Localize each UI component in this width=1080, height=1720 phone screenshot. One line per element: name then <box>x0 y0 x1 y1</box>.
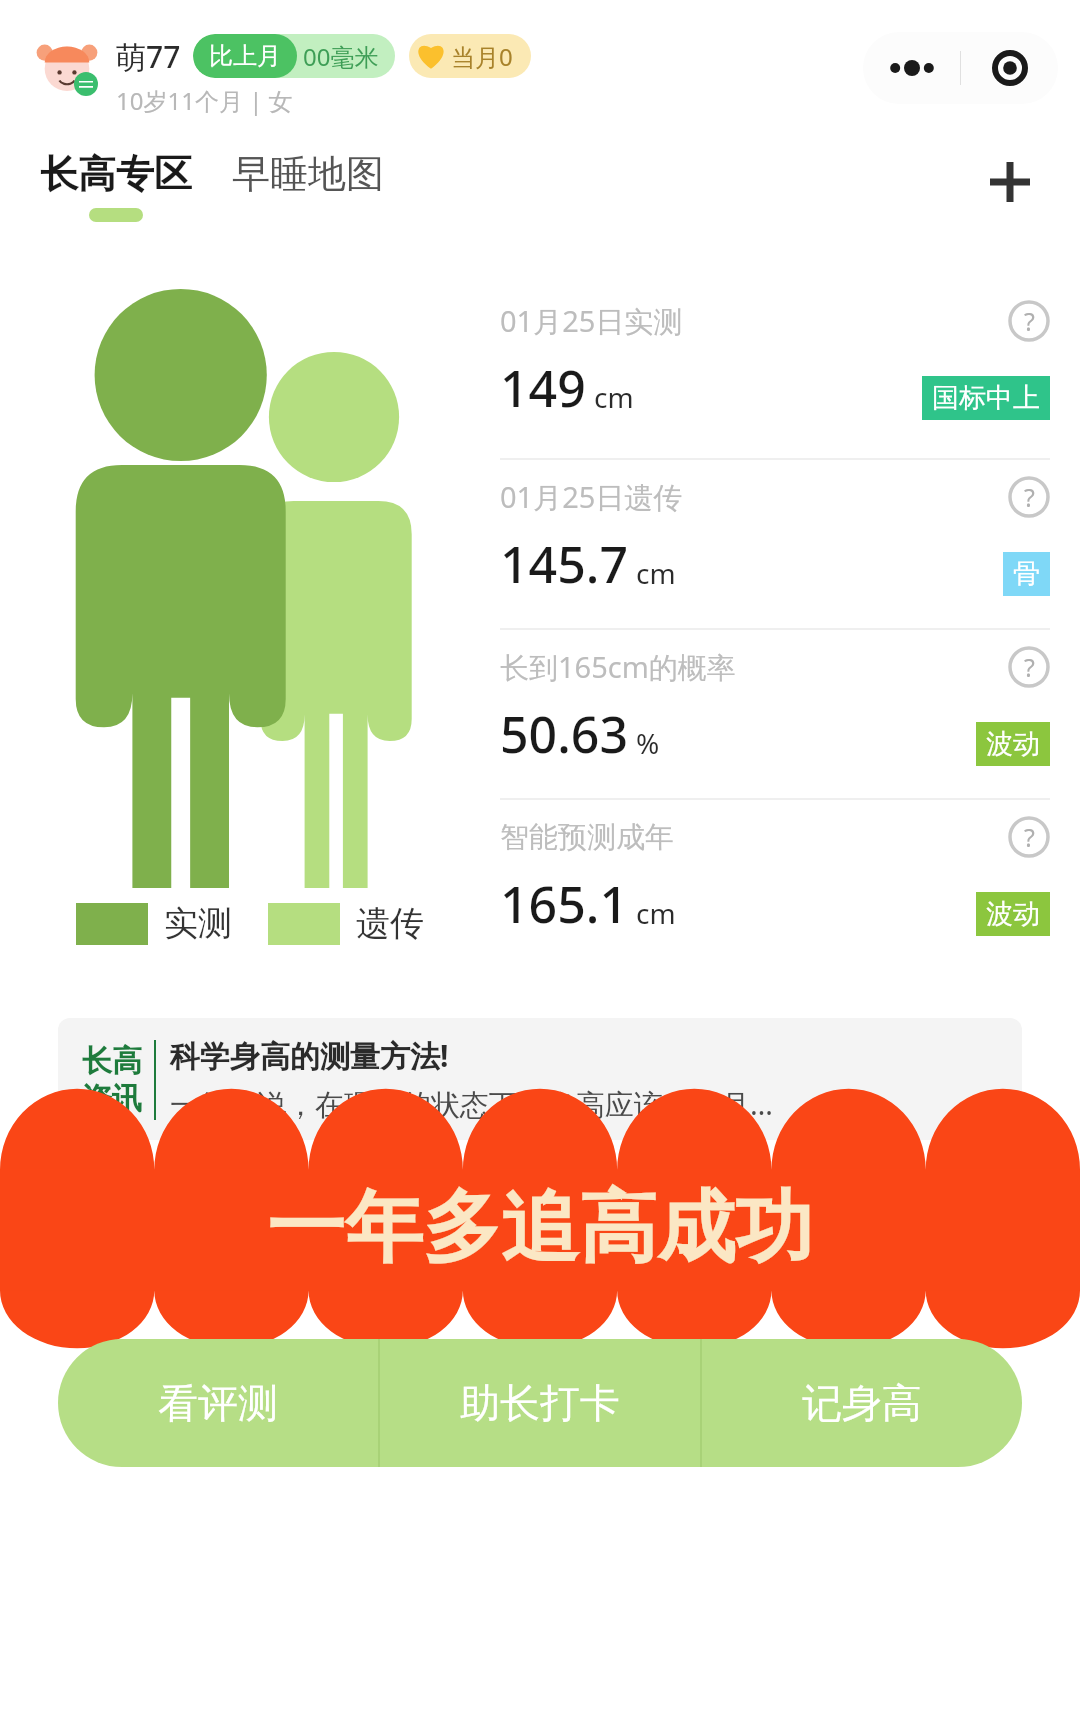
staticText: 看评测 <box>158 1378 278 1428</box>
staticText: 165.1 <box>500 870 628 938</box>
staticText: % <box>636 724 660 762</box>
staticText: 比上月 <box>209 41 281 71</box>
button[interactable]: 一年多追高成功 <box>0 1140 1080 1315</box>
staticText: 10岁11个月 | 女 <box>116 84 293 117</box>
button[interactable]: Help <box>1008 816 1050 858</box>
button[interactable]: 当月0 <box>409 34 531 78</box>
staticText: 波动 <box>986 897 1040 931</box>
button[interactable]: Close <box>961 32 1058 104</box>
button[interactable]: 记身高 <box>702 1339 1022 1467</box>
staticText: 149 <box>500 354 586 422</box>
button[interactable]: 01月25日实测 <box>500 288 1050 458</box>
staticText: 一年多追高成功 <box>267 1179 813 1277</box>
staticText: 助长打卡 <box>460 1378 620 1428</box>
staticText: cm <box>594 378 634 416</box>
staticText: 01月25日遗传 <box>500 477 683 517</box>
staticText: 长到165cm的概率 <box>500 647 736 687</box>
staticText: 科学身高的测量方法! <box>170 1035 449 1076</box>
button[interactable]: 长高 <box>58 1018 1022 1140</box>
button[interactable]: 看评测 <box>58 1339 378 1467</box>
staticText: 骨 <box>1013 557 1040 591</box>
button[interactable]: Switch profile <box>36 34 98 96</box>
staticText: 当月0 <box>451 40 513 73</box>
staticText: 国标中上 <box>932 381 1040 415</box>
staticText: ? <box>1024 480 1035 514</box>
staticText: 智能预测成年 <box>500 819 674 856</box>
button[interactable]: 01月25日遗传 <box>500 458 1050 628</box>
staticText: cm <box>636 894 676 932</box>
button[interactable]: Help <box>1008 300 1050 342</box>
button[interactable]: Help <box>1008 476 1050 518</box>
staticText: cm <box>636 554 676 592</box>
button[interactable]: 助长打卡 <box>380 1339 700 1467</box>
staticText: 00毫米 <box>303 40 379 73</box>
staticText: ? <box>1024 304 1035 338</box>
staticText: 长高 <box>82 1042 142 1080</box>
staticText: 50.63 <box>500 700 628 768</box>
staticText: 145.7 <box>500 530 628 598</box>
button[interactable]: 智能预测成年 <box>500 798 1050 968</box>
staticText: 01月25日实测 <box>500 301 683 341</box>
staticText: 一般来说，在理想的状态下，身高应该一个月… <box>170 1084 773 1124</box>
staticText: 记身高 <box>802 1378 922 1428</box>
button[interactable]: Help <box>1008 646 1050 688</box>
button[interactable]: 长高专区 <box>40 150 192 222</box>
staticText: 资讯 <box>82 1080 142 1118</box>
button[interactable]: Add <box>982 154 1038 210</box>
staticText: 实测 <box>164 902 232 945</box>
button[interactable]: More <box>863 32 960 104</box>
button[interactable]: 长到165cm的概率 <box>500 628 1050 798</box>
button[interactable]: 早睡地图 <box>232 150 384 198</box>
staticText: ? <box>1024 820 1035 854</box>
staticText: ? <box>1024 650 1035 684</box>
staticText: 萌77 <box>116 36 181 77</box>
staticText: 长高专区 <box>40 150 192 198</box>
staticText: 早睡地图 <box>232 150 384 198</box>
staticText: 遗传 <box>356 902 424 945</box>
staticText: 波动 <box>986 727 1040 761</box>
button[interactable]: 比上月 <box>193 34 395 78</box>
